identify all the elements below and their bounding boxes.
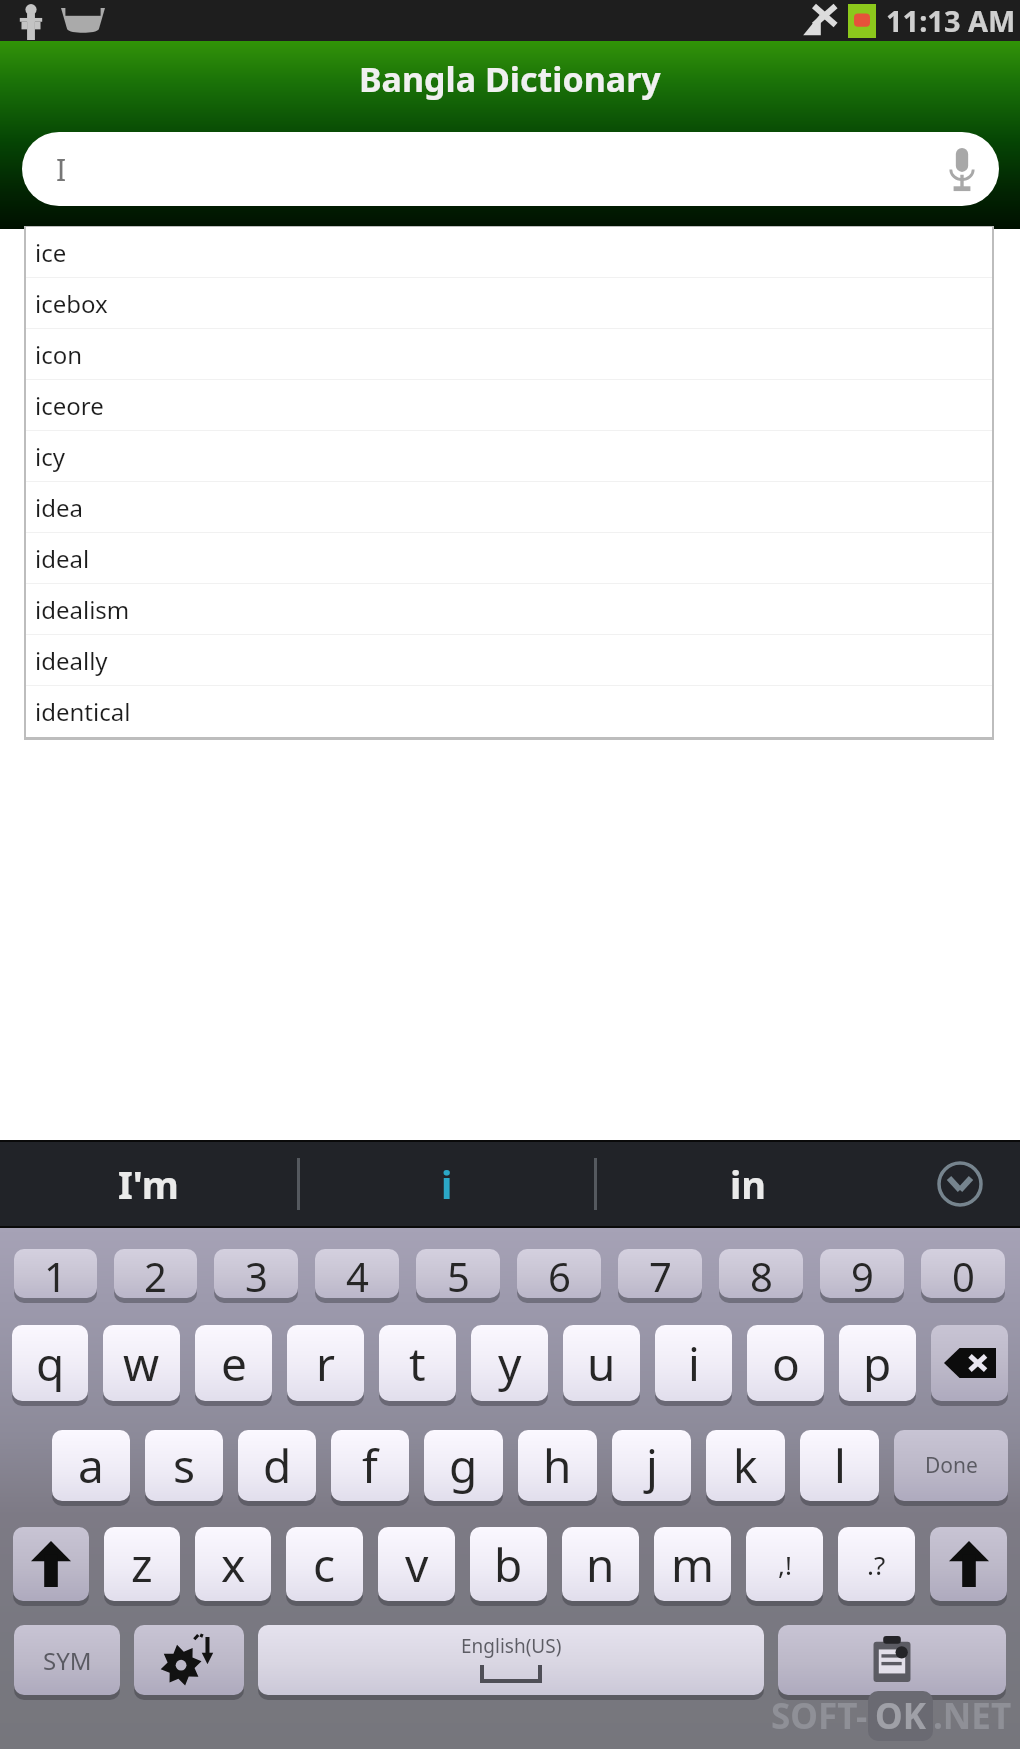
button[interactable]: iceore: [26, 380, 992, 431]
button[interactable]: idea: [26, 482, 992, 533]
button[interactable]: 6: [517, 1249, 601, 1298]
button[interactable]: I: [22, 132, 999, 206]
button[interactable]: 0: [921, 1249, 1005, 1298]
staticText: icebox: [35, 287, 108, 320]
staticText: t: [409, 1332, 426, 1395]
button[interactable]: z: [104, 1527, 180, 1601]
staticText: icon: [35, 338, 83, 371]
button[interactable]: s: [145, 1430, 223, 1501]
button[interactable]: 8: [719, 1249, 803, 1298]
button[interactable]: b: [470, 1527, 547, 1601]
button[interactable]: q: [12, 1325, 88, 1401]
button[interactable]: g: [424, 1430, 503, 1501]
button[interactable]: h: [518, 1430, 597, 1501]
staticText: w: [123, 1332, 160, 1395]
button[interactable]: d: [238, 1430, 316, 1501]
button[interactable]: f: [331, 1430, 409, 1501]
button[interactable]: Shift: [13, 1527, 89, 1601]
button[interactable]: y: [471, 1325, 548, 1401]
button[interactable]: Shift: [930, 1527, 1007, 1601]
staticText: identical: [35, 695, 131, 728]
staticText: ,!: [778, 1547, 792, 1582]
staticText: n: [586, 1533, 615, 1596]
button[interactable]: k: [706, 1430, 785, 1501]
button[interactable]: m: [654, 1527, 731, 1601]
staticText: English(US): [461, 1633, 562, 1659]
button[interactable]: a: [52, 1430, 130, 1501]
staticText: m: [671, 1533, 715, 1596]
button[interactable]: i: [655, 1325, 732, 1401]
button[interactable]: 9: [820, 1249, 904, 1298]
staticText: 2: [144, 1249, 167, 1298]
button[interactable]: p: [839, 1325, 916, 1401]
button[interactable]: w: [103, 1325, 180, 1401]
staticText: ideal: [35, 542, 90, 575]
button[interactable]: ideal: [26, 533, 992, 584]
staticText: iceore: [35, 389, 104, 422]
staticText: p: [863, 1332, 892, 1395]
staticText: g: [449, 1434, 478, 1497]
staticText: j: [646, 1434, 658, 1497]
staticText: SOFT-: [771, 1692, 868, 1740]
staticText: x: [221, 1533, 246, 1596]
staticText: Bangla Dictionary: [359, 56, 661, 102]
button[interactable]: Expand suggestions: [899, 1140, 1020, 1228]
staticText: idea: [35, 491, 83, 524]
staticText: .?: [867, 1547, 886, 1582]
button[interactable]: j: [612, 1430, 691, 1501]
button[interactable]: ,!: [746, 1527, 823, 1601]
button[interactable]: u: [563, 1325, 640, 1401]
staticText: y: [498, 1332, 522, 1395]
button[interactable]: 4: [315, 1249, 399, 1298]
staticText: 7: [649, 1249, 672, 1298]
button[interactable]: I'm: [0, 1140, 297, 1228]
button[interactable]: Backspace: [931, 1325, 1008, 1401]
button[interactable]: icebox: [26, 278, 992, 329]
staticText: ice: [35, 236, 67, 269]
button[interactable]: Clipboard: [778, 1625, 1006, 1695]
staticText: c: [313, 1533, 336, 1596]
button[interactable]: l: [800, 1430, 879, 1501]
button[interactable]: 3: [214, 1249, 298, 1298]
button[interactable]: r: [287, 1325, 364, 1401]
staticText: 3: [245, 1249, 268, 1298]
button[interactable]: i: [300, 1140, 594, 1228]
staticText: Done: [925, 1451, 978, 1480]
button[interactable]: c: [286, 1527, 363, 1601]
button[interactable]: in: [597, 1140, 899, 1228]
button[interactable]: 2: [114, 1249, 197, 1298]
staticText: i: [441, 1158, 453, 1210]
staticText: r: [316, 1332, 335, 1395]
staticText: 5: [447, 1249, 470, 1298]
button[interactable]: Voice search: [927, 132, 999, 206]
button[interactable]: icon: [26, 329, 992, 380]
button[interactable]: icy: [26, 431, 992, 482]
staticText: i: [688, 1332, 700, 1395]
staticText: u: [587, 1332, 616, 1395]
button[interactable]: ideally: [26, 635, 992, 686]
button[interactable]: n: [562, 1527, 639, 1601]
button[interactable]: Done: [894, 1430, 1008, 1501]
button[interactable]: ice: [26, 227, 992, 278]
staticText: I'm: [118, 1158, 179, 1210]
staticText: k: [733, 1434, 758, 1497]
button[interactable]: .?: [838, 1527, 915, 1601]
staticText: q: [36, 1332, 65, 1395]
button[interactable]: x: [195, 1527, 271, 1601]
button[interactable]: Space: [258, 1625, 764, 1695]
staticText: 1: [44, 1249, 67, 1298]
button[interactable]: v: [378, 1527, 455, 1601]
button[interactable]: e: [195, 1325, 272, 1401]
button[interactable]: o: [747, 1325, 824, 1401]
button[interactable]: 5: [416, 1249, 500, 1298]
button[interactable]: 7: [618, 1249, 702, 1298]
staticText: d: [263, 1434, 292, 1497]
button[interactable]: SYM: [14, 1625, 120, 1695]
button[interactable]: t: [379, 1325, 456, 1401]
button[interactable]: Settings: [134, 1625, 244, 1695]
button[interactable]: identical: [26, 686, 992, 737]
button[interactable]: idealism: [26, 584, 992, 635]
staticText: s: [173, 1434, 196, 1497]
button[interactable]: 1: [14, 1249, 97, 1298]
staticText: icy: [35, 440, 65, 473]
